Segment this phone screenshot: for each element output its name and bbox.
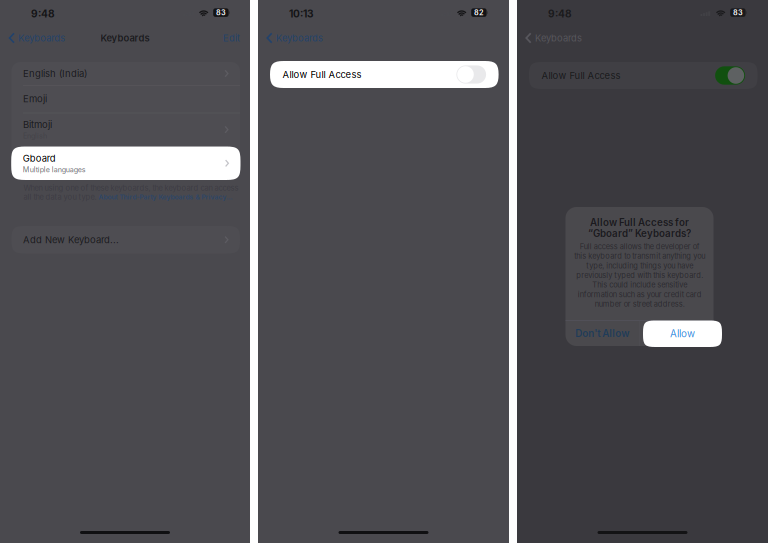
button[interactable]: Bitmoji: [11, 119, 240, 140]
button[interactable]: Edit: [223, 29, 240, 47]
staticText: 9:48: [548, 8, 572, 20]
staticText: Allow: [664, 327, 689, 339]
staticText: Edit: [223, 32, 240, 44]
staticText: Keyboards: [18, 32, 65, 44]
button[interactable]: Allow: [640, 321, 713, 346]
staticText: Bitmoji: [23, 119, 52, 130]
button[interactable]: Gboard: [11, 146, 240, 180]
button[interactable]: English (India): [11, 68, 240, 79]
staticText: Keyboards: [535, 32, 582, 44]
button[interactable]: Emoji: [11, 93, 240, 105]
button[interactable]: Keyboards: [525, 28, 582, 48]
button[interactable]: Keyboards: [266, 28, 323, 48]
button[interactable]: Don't Allow: [565, 321, 639, 346]
staticText: “Gboard” Keyboards?: [588, 228, 691, 239]
staticText: Keyboards: [100, 32, 149, 44]
staticText: Allow Full Access: [541, 70, 620, 81]
staticText: Add New Keyboard...: [23, 234, 119, 245]
staticText: all the data you type.: [23, 192, 98, 202]
staticText: Multiple languages: [23, 165, 86, 174]
staticText: Gboard: [23, 152, 56, 164]
staticText: 83: [216, 8, 226, 17]
staticText: 82: [474, 8, 484, 17]
staticText: English (India): [23, 68, 87, 79]
staticText: Don't Allow: [575, 327, 629, 339]
button[interactable]: About Third-Party Keyboards & Privacy...: [98, 193, 232, 201]
button[interactable]: Keyboards: [9, 28, 65, 48]
staticText: When using one of these keyboards, the k…: [23, 183, 238, 193]
button[interactable]: Allow: [643, 320, 722, 347]
staticText: Allow Full Access for: [590, 217, 689, 228]
staticText: 10:13: [289, 8, 314, 20]
staticText: Emoji: [23, 93, 47, 105]
staticText: 9:48: [31, 8, 55, 20]
staticText: Allow Full Access: [282, 69, 361, 80]
staticText: Full access allows the developer of this…: [574, 242, 705, 308]
button[interactable]: Allow Full Access: [270, 61, 499, 88]
staticText: Keyboards: [276, 32, 323, 44]
staticText: About Third-Party Keyboards & Privacy...: [98, 193, 232, 201]
button[interactable]: Add New Keyboard...: [11, 234, 240, 245]
staticText: Allow: [670, 328, 695, 340]
staticText: 83: [733, 8, 743, 17]
